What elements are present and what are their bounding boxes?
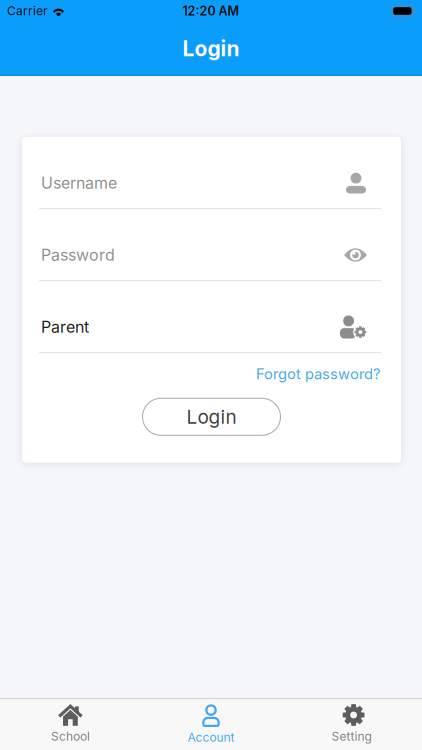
staticText: Account <box>187 730 234 744</box>
button[interactable]: Forgot password? <box>256 365 381 383</box>
staticText: Username <box>41 173 117 193</box>
staticText: Parent <box>41 317 89 337</box>
button[interactable]: Login <box>142 398 281 436</box>
button[interactable]: School <box>0 699 141 750</box>
staticText: 12:20 AM <box>182 3 239 18</box>
staticText: Carrier <box>7 4 48 18</box>
button[interactable]: Setting <box>281 699 422 750</box>
staticText: Setting <box>332 729 372 743</box>
staticText: Forgot password? <box>256 365 381 383</box>
staticText: School <box>51 729 90 743</box>
button[interactable]: Account <box>141 699 281 750</box>
button[interactable]: Show password <box>344 247 367 262</box>
staticText: Login <box>186 405 236 428</box>
staticText: Password <box>41 245 115 265</box>
staticText: Login <box>182 36 239 61</box>
